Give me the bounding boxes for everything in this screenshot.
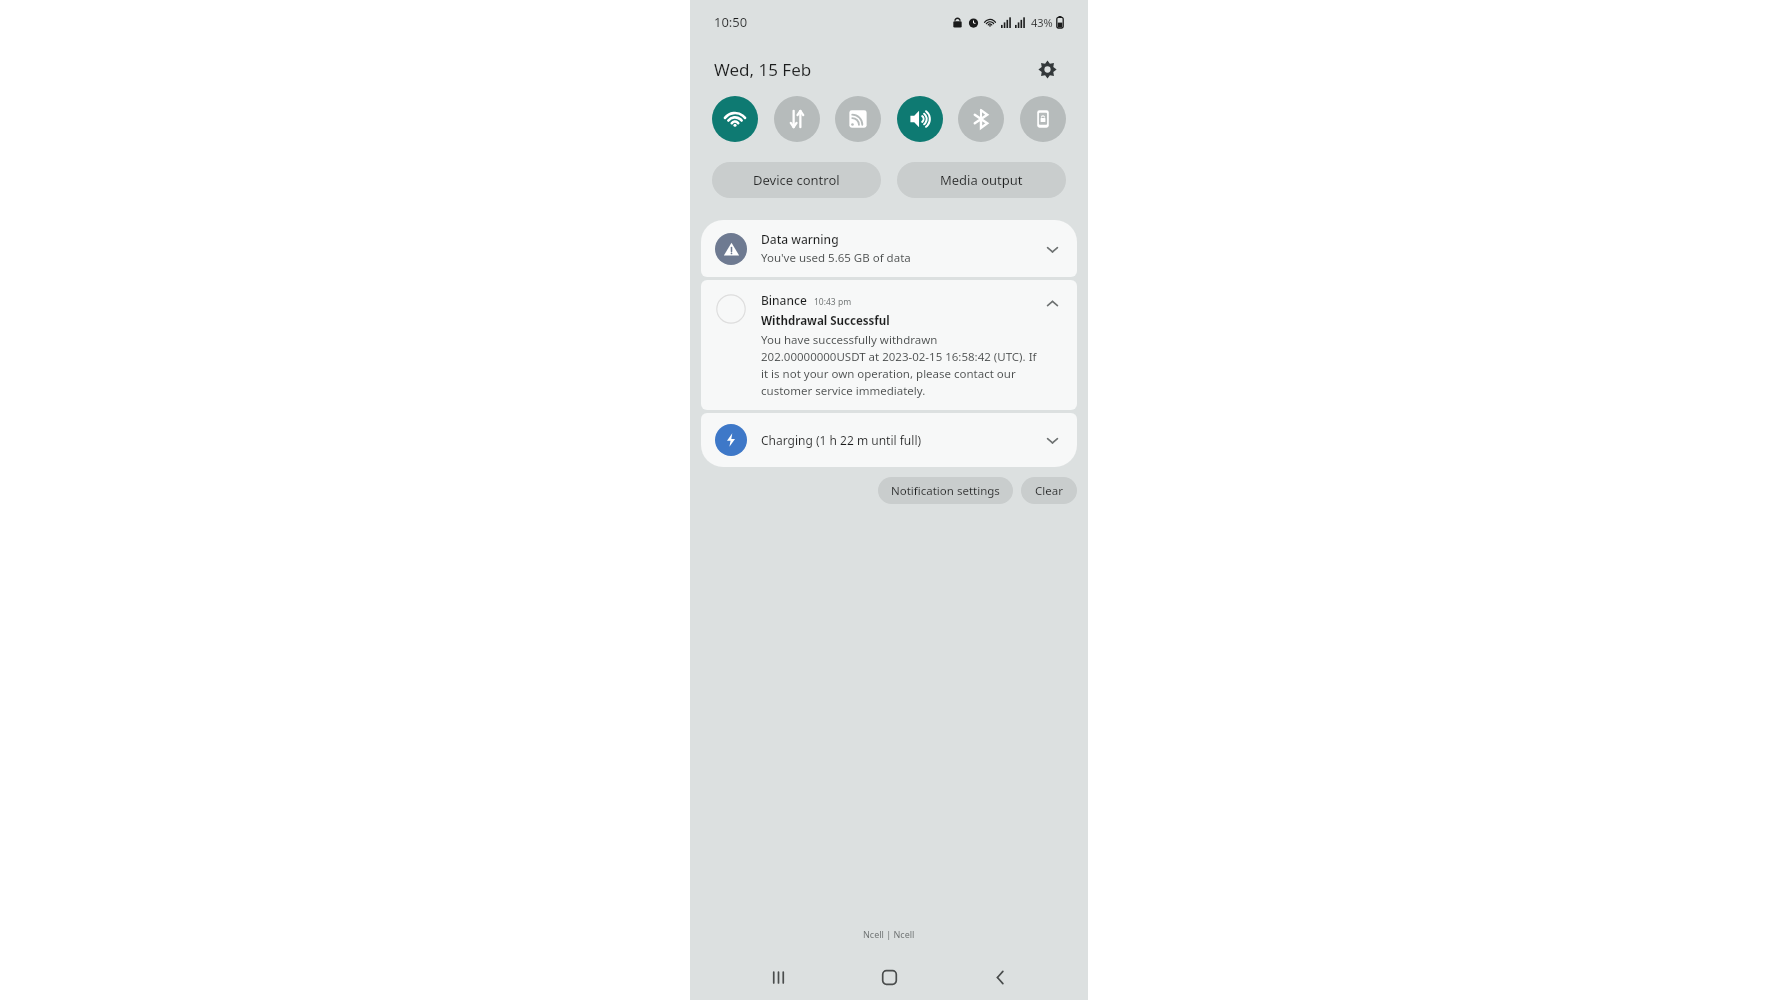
staticText: Charging (1 h 22 m until full) <box>761 432 1041 448</box>
button[interactable]: Recent apps <box>755 954 801 1000</box>
button[interactable]: Settings <box>1030 52 1064 86</box>
button[interactable]: Expand <box>1041 238 1063 260</box>
button[interactable]: Back <box>977 954 1023 1000</box>
button[interactable]: Wi-Fi <box>712 96 758 142</box>
staticText: Ncell | Ncell <box>863 928 915 940</box>
button[interactable]: Notification settings <box>878 477 1013 504</box>
staticText: Device control <box>753 171 840 189</box>
button[interactable]: Clear <box>1021 477 1077 504</box>
button[interactable]: Smart View <box>835 96 881 142</box>
staticText: Binance <box>761 292 807 308</box>
staticText: Wed, 15 Feb <box>714 58 812 81</box>
button[interactable]: Mobile data <box>774 96 820 142</box>
staticText: 43% <box>1031 15 1053 30</box>
staticText: Data warning <box>761 231 839 247</box>
staticText: Media output <box>940 171 1023 189</box>
staticText: Withdrawal Successful <box>761 313 890 329</box>
staticText: You've used 5.65 GB of data <box>761 250 911 266</box>
staticText: You have successfully withdrawn 202.0000… <box>761 332 1041 398</box>
staticText: 10:43 pm <box>814 296 852 308</box>
staticText: 10:50 <box>714 13 748 31</box>
button[interactable]: Charging (1 h 22 m until full) <box>701 413 1077 467</box>
button[interactable]: Data warning <box>701 220 1077 277</box>
button[interactable]: Media output <box>897 162 1066 198</box>
button[interactable]: Bluetooth <box>958 96 1004 142</box>
button[interactable]: Expand <box>1041 429 1063 451</box>
button[interactable]: Collapse <box>1041 292 1063 314</box>
button[interactable]: Device control <box>712 162 881 198</box>
button[interactable]: Home <box>866 954 912 1000</box>
button[interactable]: Sound <box>897 96 943 142</box>
button[interactable]: Auto rotate <box>1020 96 1066 142</box>
button[interactable]: Binance <box>701 280 1077 410</box>
staticText: Notification settings <box>891 483 1000 499</box>
staticText: Clear <box>1035 483 1063 499</box>
